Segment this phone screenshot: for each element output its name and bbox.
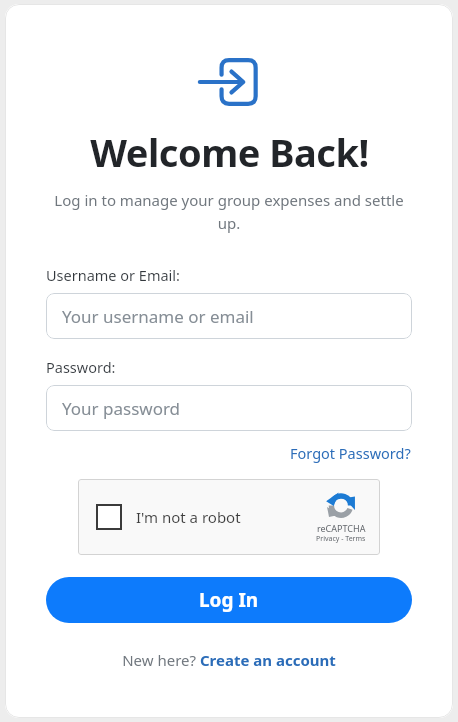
button[interactable]: New here? Create an account <box>120 648 338 672</box>
button[interactable]: Log In <box>46 577 412 623</box>
button[interactable]: I'm not a robot checkbox <box>78 479 380 555</box>
staticText: Your username or email <box>62 305 254 328</box>
staticText: Log in to manage your group expenses and… <box>46 190 412 233</box>
button[interactable]: Your password <box>46 385 412 431</box>
staticText: Log In <box>199 587 259 613</box>
staticText: Your password <box>62 397 181 420</box>
button[interactable]: Your username or email <box>46 293 412 339</box>
other: I'm not a robot checkbox <box>96 504 122 530</box>
other: Log in <box>198 56 260 108</box>
staticText: I'm not a robot <box>136 507 241 527</box>
staticText: Privacy - Terms <box>316 534 366 544</box>
staticText: Username or Email: <box>46 265 180 285</box>
staticText: Welcome Back! <box>90 126 369 178</box>
staticText: Password: <box>46 357 116 377</box>
staticText: Forgot Password? <box>290 443 411 463</box>
button[interactable]: Forgot Password? <box>289 441 412 465</box>
staticText: reCAPTCHA <box>317 522 366 534</box>
staticText: New here? Create an account <box>122 650 336 670</box>
